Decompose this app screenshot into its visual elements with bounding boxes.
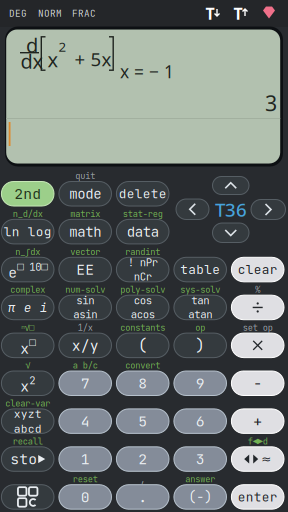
staticText: sys-solv	[180, 284, 220, 295]
staticText: x	[20, 339, 29, 358]
staticText: xyzt	[14, 406, 42, 421]
staticText: stat-reg	[123, 208, 163, 220]
staticText: (	[138, 335, 148, 356]
staticText: ≈	[261, 452, 271, 466]
staticText: data	[127, 222, 159, 241]
staticText: −	[253, 374, 262, 393]
button[interactable]: x	[1, 371, 54, 395]
staticText: 3	[265, 89, 277, 117]
button[interactable]: 2	[116, 447, 169, 471]
button[interactable]: sto	[1, 447, 54, 471]
button[interactable]: sin	[59, 295, 111, 320]
staticText: 1	[81, 449, 90, 469]
button[interactable]: 4	[59, 409, 111, 433]
staticText: 5	[138, 411, 147, 431]
staticText: π e i	[8, 299, 48, 316]
staticText: 2	[138, 449, 147, 469]
button[interactable]: 7	[59, 371, 111, 395]
staticText: set op	[243, 322, 273, 333]
button[interactable]: data	[116, 219, 169, 244]
button[interactable]: cos	[116, 295, 169, 320]
staticText: %	[255, 284, 260, 295]
button[interactable]: Move down	[212, 223, 249, 242]
button[interactable]: math	[59, 219, 111, 244]
staticText: DEG	[9, 7, 27, 20]
button[interactable]: Premium	[259, 3, 279, 23]
button[interactable]: −	[231, 371, 284, 395]
staticText: ,	[140, 473, 145, 485]
staticText: 2	[58, 38, 66, 55]
staticText: 4	[81, 411, 90, 431]
staticText: □ 10□	[17, 260, 47, 274]
button[interactable]: Move left	[176, 199, 209, 219]
staticText: tan	[191, 293, 209, 307]
staticText: 1/x	[78, 322, 93, 333]
staticText: T36	[215, 197, 247, 222]
button[interactable]: e	[1, 257, 54, 282]
button[interactable]	[1, 485, 54, 509]
button[interactable]: 9	[174, 371, 226, 395]
button[interactable]: (−)	[174, 485, 226, 509]
staticText: )	[195, 335, 205, 356]
staticText: 2	[29, 374, 35, 387]
button[interactable]: ! nPr	[116, 257, 169, 282]
button[interactable]: EE	[59, 257, 111, 282]
staticText: √	[25, 360, 30, 371]
staticText: poly-solv	[120, 284, 165, 295]
button[interactable]: mode	[59, 181, 111, 206]
button[interactable]: +	[231, 409, 284, 433]
staticText: + 5x	[74, 47, 111, 71]
staticText: acos	[131, 307, 155, 321]
staticText: nCr	[134, 270, 152, 284]
button[interactable]: 8	[116, 371, 169, 395]
staticText: asin	[73, 307, 97, 321]
staticText: ln log	[4, 223, 52, 240]
staticText: quit	[75, 170, 95, 182]
staticText: a b/c	[73, 360, 98, 371]
staticText: reset	[73, 473, 98, 485]
button[interactable]: .	[116, 485, 169, 509]
staticText: (−)	[188, 488, 212, 506]
staticText: EE	[76, 260, 94, 279]
staticText: matrix	[70, 208, 100, 220]
staticText: recall	[13, 436, 43, 447]
button[interactable]: delete	[116, 181, 169, 206]
button[interactable]: Decrease text size	[203, 3, 223, 23]
button[interactable]: 6	[174, 409, 226, 433]
staticText: num-solv	[65, 284, 105, 295]
button[interactable]: π e i	[1, 295, 54, 320]
button[interactable]: x/y	[59, 333, 111, 358]
button[interactable]: 5	[116, 409, 169, 433]
staticText: 7	[81, 374, 90, 393]
button[interactable]: xyzt	[1, 409, 54, 433]
button[interactable]: clear	[231, 257, 284, 282]
button[interactable]: 1	[59, 447, 111, 471]
button[interactable]: x	[1, 333, 54, 358]
staticText: sin	[76, 293, 94, 307]
staticText: cos	[134, 293, 152, 307]
button[interactable]: ln log	[1, 219, 54, 244]
button[interactable]: enter	[231, 485, 284, 509]
staticText: op	[195, 322, 205, 333]
button[interactable]: 2nd	[1, 181, 54, 206]
button[interactable]: 3	[174, 447, 226, 471]
button[interactable]: (	[116, 333, 169, 358]
staticText: NORM	[38, 7, 62, 20]
button[interactable]: ≈	[231, 447, 284, 471]
staticText: 6	[196, 411, 205, 431]
staticText: mode	[69, 184, 101, 203]
staticText: d	[26, 32, 38, 58]
button[interactable]	[231, 295, 284, 320]
button[interactable]: Increase text size	[231, 3, 251, 23]
staticText: 2nd	[14, 184, 41, 203]
button[interactable]: Move right	[251, 199, 285, 219]
button[interactable]: 0	[59, 485, 111, 509]
button[interactable]: table	[174, 257, 226, 282]
button[interactable]: )	[174, 333, 226, 358]
button[interactable]: tan	[174, 295, 226, 320]
staticText: T	[233, 3, 242, 24]
staticText: □	[29, 336, 35, 350]
button[interactable]	[231, 333, 284, 358]
button[interactable]: Move up	[212, 176, 249, 194]
staticText: abcd	[14, 421, 42, 436]
